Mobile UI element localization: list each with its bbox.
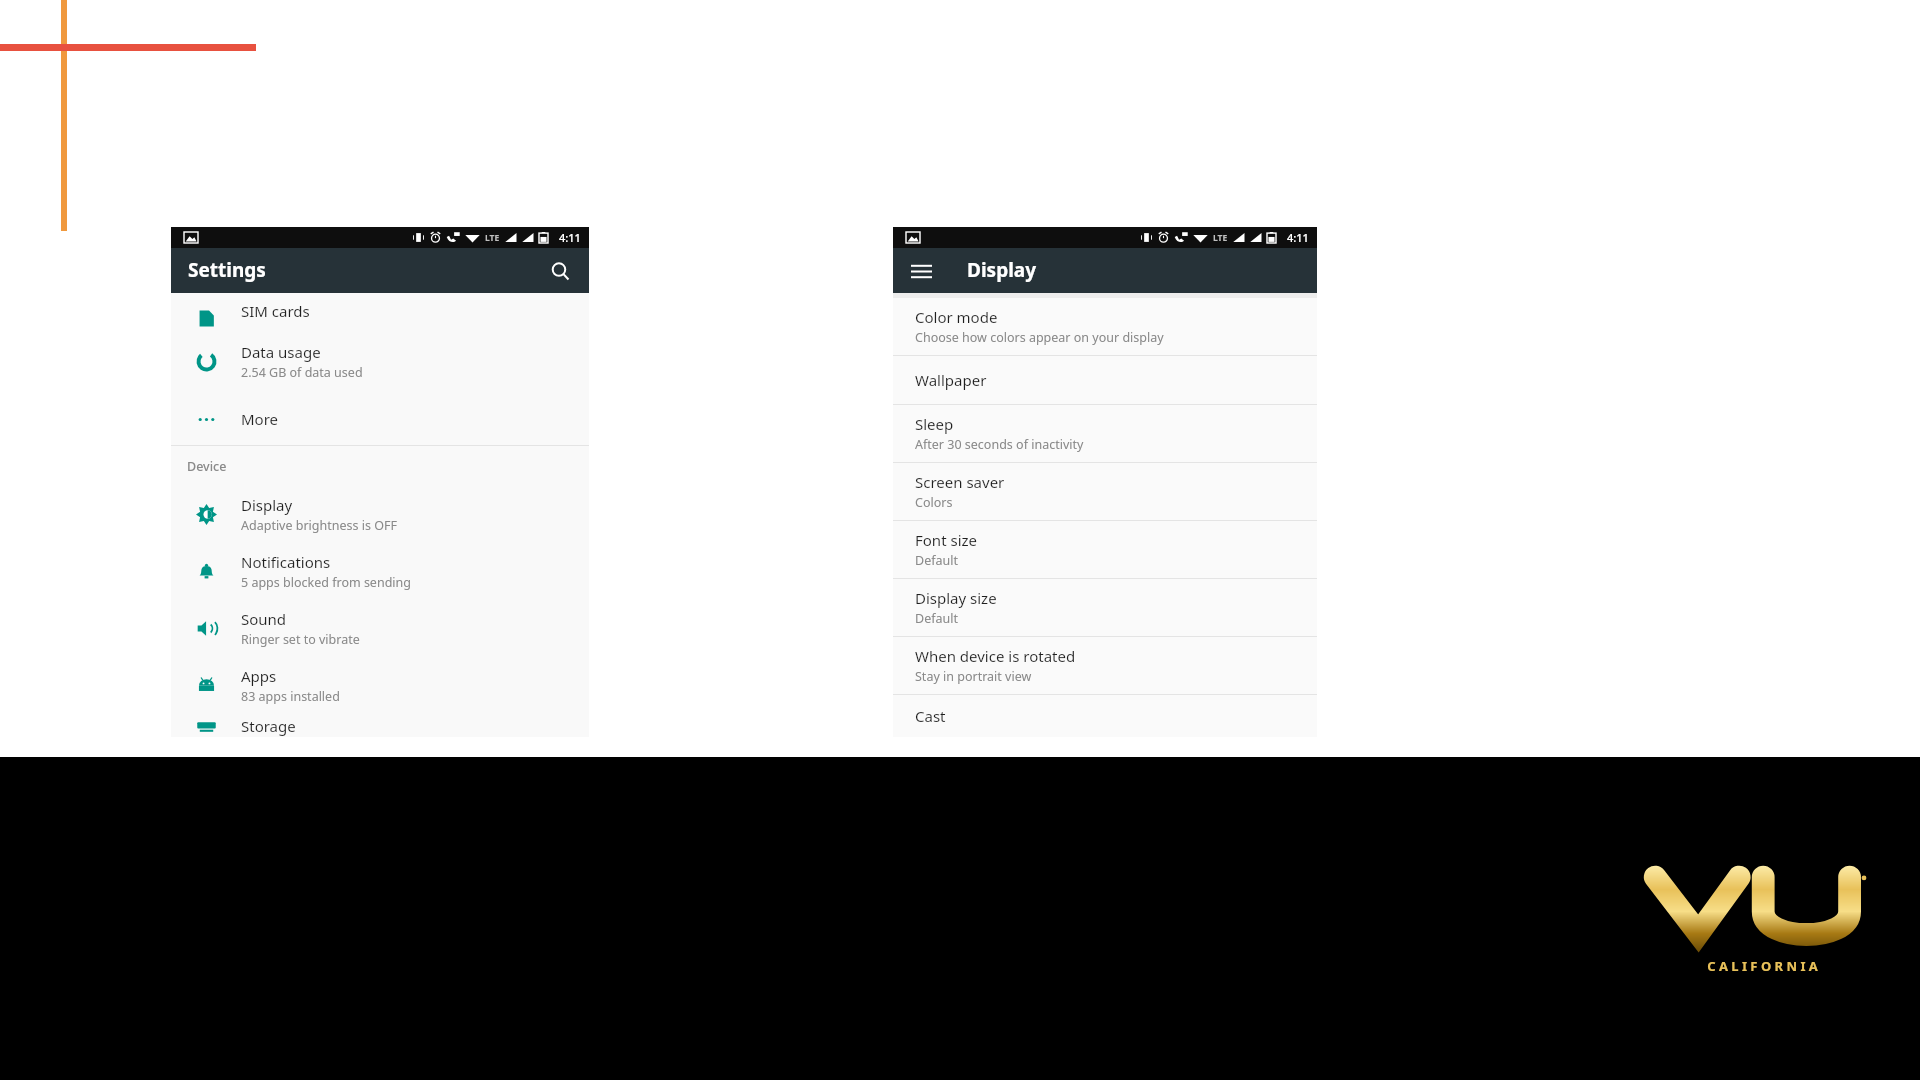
button[interactable]: Display	[171, 486, 589, 543]
staticText: Colors	[915, 494, 953, 511]
staticText: Settings	[188, 257, 266, 283]
staticText: LTE	[485, 232, 500, 244]
staticText: 5 apps blocked from sending	[241, 574, 411, 591]
staticText: LTE	[1213, 232, 1228, 244]
staticText: SIM cards	[241, 301, 310, 321]
button[interactable]: Notifications	[171, 543, 589, 600]
button[interactable]: Data usage	[171, 329, 589, 393]
staticText: Default	[915, 552, 958, 569]
staticText: Cast	[915, 706, 946, 726]
button[interactable]: Wallpaper	[893, 356, 1317, 404]
staticText: 4:11	[1287, 230, 1309, 245]
staticText: Default	[915, 610, 958, 627]
button[interactable]: Screen saver	[893, 463, 1317, 520]
staticText: 83 apps installed	[241, 688, 340, 705]
staticText: Ringer set to vibrate	[241, 631, 360, 648]
staticText: Wallpaper	[915, 370, 987, 390]
staticText: Display	[241, 495, 293, 515]
staticText: Stay in portrait view	[915, 668, 1032, 685]
staticText: Adaptive brightness is OFF	[241, 517, 397, 534]
button[interactable]: Open navigation menu	[903, 253, 939, 289]
button[interactable]: Search	[543, 254, 577, 288]
staticText: Sound	[241, 609, 287, 629]
staticText: Sleep	[915, 414, 954, 434]
button[interactable]: SIM cards	[171, 293, 589, 329]
button[interactable]: Font size	[893, 521, 1317, 578]
staticText: Choose how colors appear on your display	[915, 329, 1164, 346]
button[interactable]: When device is rotated	[893, 637, 1317, 694]
button[interactable]: Display size	[893, 579, 1317, 636]
button[interactable]: Color mode	[893, 298, 1317, 355]
staticText: Notifications	[241, 552, 331, 572]
staticText: Device	[187, 458, 227, 475]
staticText: Color mode	[915, 307, 998, 327]
staticText: 4:11	[559, 230, 581, 245]
staticText: Display size	[915, 588, 997, 608]
button[interactable]: Apps	[171, 657, 589, 714]
staticText: More	[241, 409, 279, 429]
staticText: Storage	[241, 716, 296, 736]
button[interactable]: Sound	[171, 600, 589, 657]
button[interactable]: Sleep	[893, 405, 1317, 462]
staticText: Screen saver	[915, 472, 1005, 492]
button[interactable]: Storage	[171, 714, 589, 737]
staticText: Display	[967, 257, 1037, 283]
staticText: Apps	[241, 666, 277, 686]
staticText: Data usage	[241, 342, 321, 362]
button[interactable]: Cast	[893, 695, 1317, 737]
button[interactable]: More	[171, 393, 589, 445]
staticText: When device is rotated	[915, 646, 1076, 666]
staticText: C A L I F O R N I A	[1707, 957, 1818, 975]
staticText: Font size	[915, 530, 978, 550]
staticText: After 30 seconds of inactivity	[915, 436, 1084, 453]
staticText: 2.54 GB of data used	[241, 364, 363, 381]
